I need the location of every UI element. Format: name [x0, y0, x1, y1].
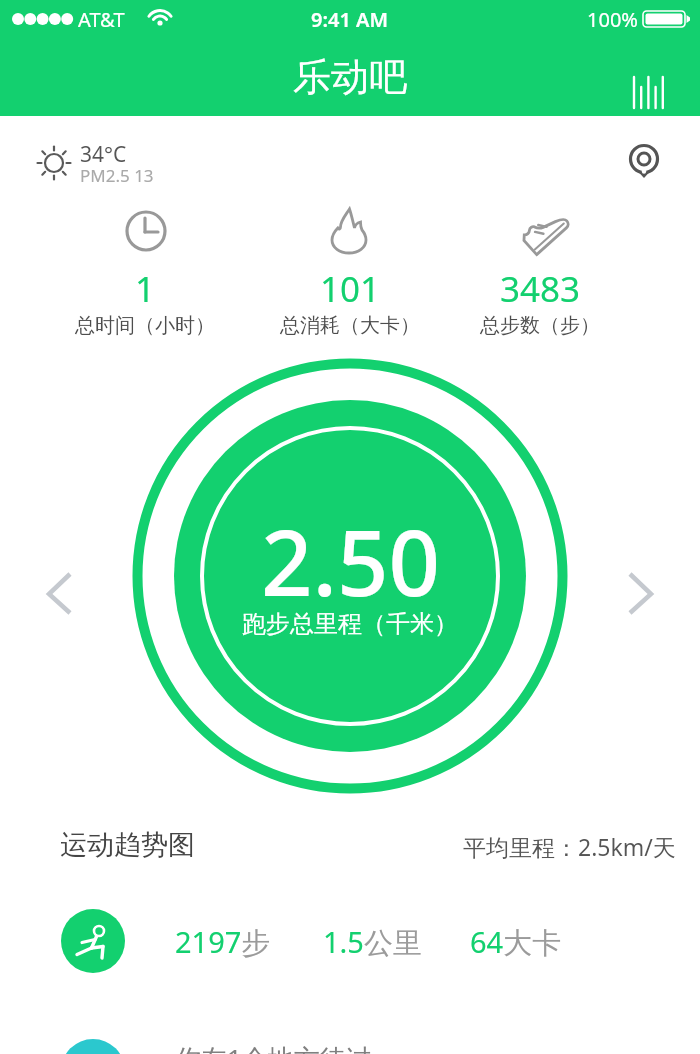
button[interactable] [61, 1039, 125, 1054]
staticText: 总步数（步） [480, 313, 600, 338]
button[interactable] [610, 564, 670, 624]
staticText: PM2.5 13 [80, 164, 154, 186]
staticText: 总消耗（大卡） [280, 313, 420, 338]
button[interactable] [174, 400, 526, 752]
staticText: 运动趋势图 [60, 828, 195, 862]
staticText: 101 [320, 265, 381, 309]
button[interactable] [622, 70, 674, 116]
button[interactable] [30, 564, 90, 624]
staticText: 2.50 [261, 500, 440, 610]
staticText: 34°C [80, 140, 127, 164]
staticText: 总时间（小时） [75, 313, 215, 338]
staticText: 你在1个地方待过 [175, 1040, 372, 1054]
button[interactable] [620, 136, 668, 186]
staticText: 9:41 AM [311, 6, 389, 33]
button[interactable] [0, 905, 700, 977]
staticText: 64大卡 [470, 922, 562, 962]
staticText: 1.5公里 [323, 922, 422, 962]
staticText: 100% [587, 6, 638, 33]
staticText: 跑步总里程（千米） [242, 609, 458, 639]
staticText: 1 [135, 265, 156, 309]
staticText: 2197步 [175, 922, 271, 962]
staticText: 乐动吧 [293, 53, 407, 101]
staticText: 3483 [500, 265, 581, 309]
staticText: 平均里程：2.5km/天 [463, 831, 676, 862]
staticText: AT&T [78, 6, 125, 33]
